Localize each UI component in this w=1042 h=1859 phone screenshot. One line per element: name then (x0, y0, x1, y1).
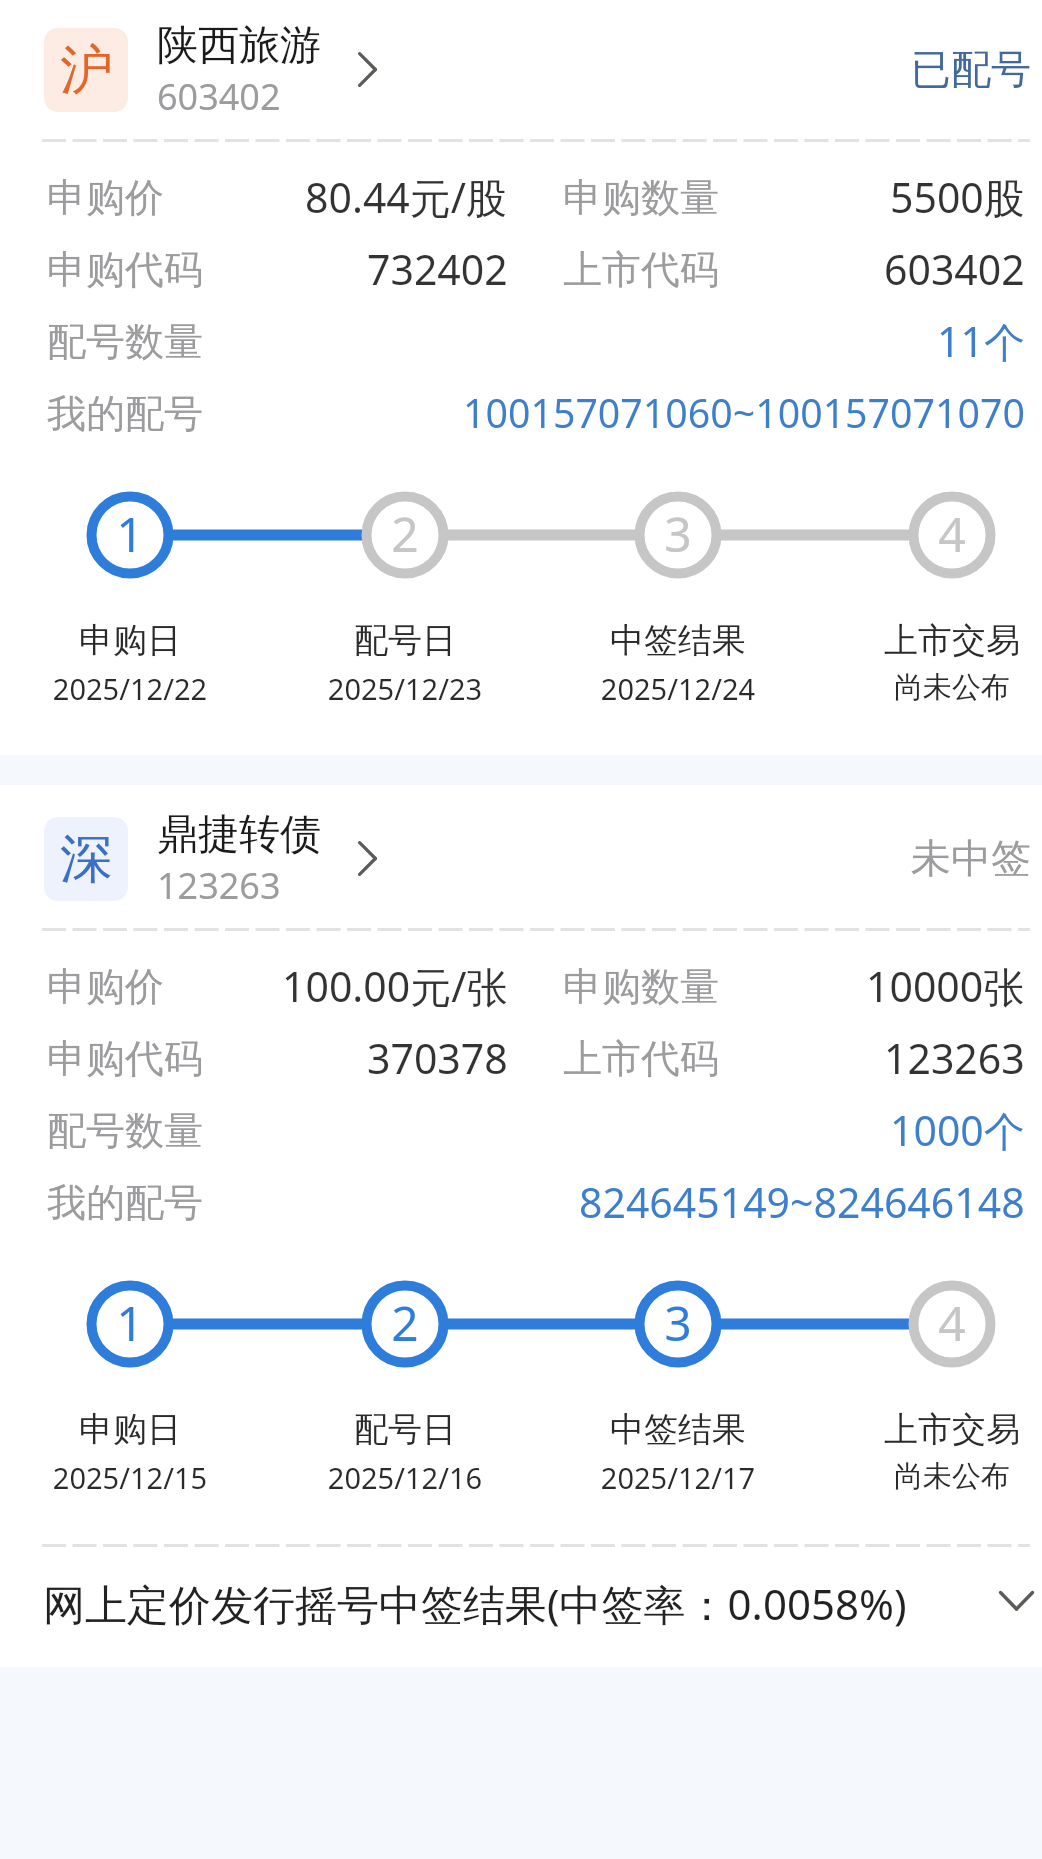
staticText: 网上定价发行摇号中签结果(中签率：0.0058%) (43, 1575, 907, 1632)
staticText: 80.44元/股 (305, 169, 508, 225)
staticText: 1 (80, 1290, 180, 1355)
staticText: 陕西旅游 (157, 20, 321, 72)
staticText: 深 (60, 826, 113, 893)
staticText: 824645149~824646148 (579, 1174, 1025, 1230)
staticText: 中签结果 (558, 619, 798, 662)
staticText: 4 (902, 501, 1002, 566)
staticText: 3 (628, 501, 728, 566)
staticText: 上市交易 (832, 619, 1042, 662)
staticText: 配号数量 (47, 317, 203, 366)
staticText: 申购价 (47, 173, 164, 222)
staticText: 123263 (157, 861, 281, 910)
staticText: 配号日 (285, 1408, 525, 1451)
staticText: 603402 (157, 72, 281, 121)
staticText: 3 (628, 1290, 728, 1355)
staticText: 申购数量 (563, 173, 719, 222)
staticText: 尚未公布 (832, 1458, 1042, 1495)
staticText: 11个 (937, 313, 1025, 369)
staticText: 我的配号 (47, 1178, 203, 1227)
staticText: 配号数量 (47, 1106, 203, 1155)
staticText: 370378 (367, 1030, 508, 1086)
staticText: 2025/12/16 (285, 1458, 525, 1497)
staticText: 申购数量 (563, 962, 719, 1011)
staticText: 2 (355, 501, 455, 566)
staticText: 尚未公布 (832, 669, 1042, 706)
staticText: 2025/12/23 (285, 669, 525, 708)
staticText: 1000个 (890, 1102, 1025, 1158)
staticText: 10000张 (866, 958, 1025, 1014)
staticText: 申购日 (10, 619, 250, 662)
other: 详情 (358, 52, 377, 88)
staticText: 732402 (367, 241, 508, 297)
staticText: 4 (902, 1290, 1002, 1355)
staticText: 申购日 (10, 1408, 250, 1451)
staticText: 2025/12/17 (558, 1458, 798, 1497)
staticText: 沪 (60, 37, 113, 104)
staticText: 申购代码 (47, 1034, 203, 1083)
staticText: 配号日 (285, 619, 525, 662)
staticText: 未中签 (911, 833, 1031, 883)
staticText: 603402 (884, 241, 1025, 297)
staticText: 中签结果 (558, 1408, 798, 1451)
staticText: 5500股 (890, 169, 1025, 225)
button[interactable]: 网上定价发行摇号中签结果(中签率：0.0058%) (0, 1547, 1042, 1667)
staticText: 2025/12/24 (558, 669, 798, 708)
staticText: 100157071060~100157071070 (463, 386, 1025, 440)
staticText: 上市代码 (563, 1034, 719, 1083)
staticText: 我的配号 (47, 389, 203, 438)
staticText: 已配号 (911, 44, 1031, 94)
button[interactable]: 深 (0, 789, 1042, 928)
staticText: 123263 (884, 1030, 1025, 1086)
staticText: 上市代码 (563, 245, 719, 294)
staticText: 2025/12/15 (10, 1458, 250, 1497)
staticText: 申购价 (47, 962, 164, 1011)
button[interactable]: 沪 (0, 0, 1042, 139)
other: 详情 (358, 841, 377, 877)
staticText: 2 (355, 1290, 455, 1355)
staticText: 2025/12/22 (10, 669, 250, 708)
staticText: 100.00元/张 (282, 958, 508, 1014)
staticText: 1 (80, 501, 180, 566)
staticText: 上市交易 (832, 1408, 1042, 1451)
staticText: 申购代码 (47, 245, 203, 294)
staticText: 鼎捷转债 (157, 809, 321, 861)
